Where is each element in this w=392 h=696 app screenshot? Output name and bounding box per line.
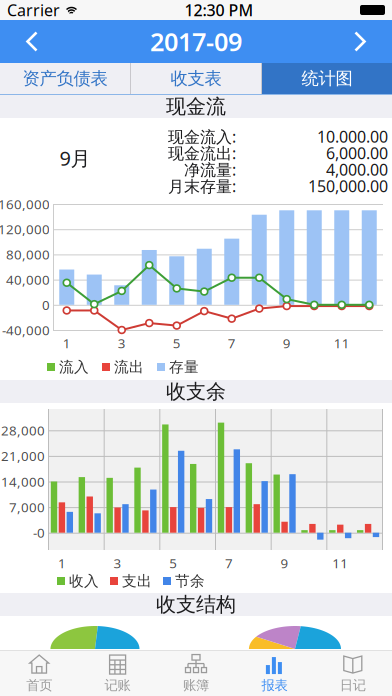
staticText: 存量 [169,358,199,376]
button[interactable]: 资产负债表 [0,63,130,94]
staticText: 6,000.00 [326,142,388,164]
button[interactable]: 账簿 [157,650,235,696]
staticText: 160,000 [0,195,50,213]
button[interactable]: 收支表 [131,63,261,94]
staticText: 记账 [105,677,131,693]
button[interactable]: 统计图 [262,63,392,94]
staticText: 80,000 [6,245,50,263]
button[interactable]: 日记 [314,650,392,696]
staticText: 28,000 [1,421,45,439]
staticText: 支出 [122,572,152,590]
staticText: 流出 [114,358,144,376]
staticText: 120,000 [0,220,50,238]
staticText: Carrier [7,0,60,21]
staticText: 9月 [59,145,90,171]
staticText: 9 [281,554,289,572]
staticText: 4,000.00 [326,159,388,180]
staticText: 流入 [59,358,89,376]
staticText: 11 [334,334,350,352]
staticText: -0 [33,524,45,541]
staticText: 40,000 [6,271,50,288]
staticText: 3 [118,334,126,352]
staticText: 月末存量: [168,175,236,197]
staticText: 现金流出: [168,142,236,164]
staticText: 首页 [26,677,52,693]
staticText: 节余 [175,572,205,590]
staticText: 14,000 [1,473,45,490]
staticText: 净流量: [184,159,236,180]
staticText: 1 [58,554,66,572]
staticText: 收支余 [166,379,226,404]
staticText: 5 [169,554,177,572]
staticText: 现金流 [166,94,226,119]
staticText: 报表 [261,677,287,693]
button[interactable]: 记账 [78,650,157,696]
staticText: 21,000 [1,447,45,465]
staticText: 3 [114,554,122,572]
staticText: 10.000.00 [317,126,388,147]
staticText: 7 [225,554,233,572]
staticText: -40,000 [2,321,50,339]
staticText: 5 [173,334,181,352]
button[interactable]: 报表 [235,650,314,696]
staticText: 7,000 [9,498,45,516]
staticText: 资产负债表 [22,68,107,89]
staticText: 0 [42,296,50,314]
staticText: 12:30 PM [184,0,253,21]
staticText: 收入 [69,572,99,590]
staticText: 9 [283,334,291,352]
staticText: 账簿 [183,677,209,693]
staticText: 收支结构 [156,592,236,617]
button[interactable]: 首页 [0,650,78,696]
staticText: 日记 [340,677,366,693]
staticText: 2017-09 [150,25,242,58]
staticText: 1 [63,334,71,352]
staticText: 统计图 [301,68,352,89]
staticText: 150,000.00 [308,175,388,197]
button[interactable]: Previous month [0,20,64,63]
staticText: 现金流入: [168,126,236,147]
staticText: 收支表 [170,68,221,89]
staticText: 11 [332,554,348,572]
staticText: 7 [228,334,236,352]
button[interactable]: Next month [328,20,392,63]
